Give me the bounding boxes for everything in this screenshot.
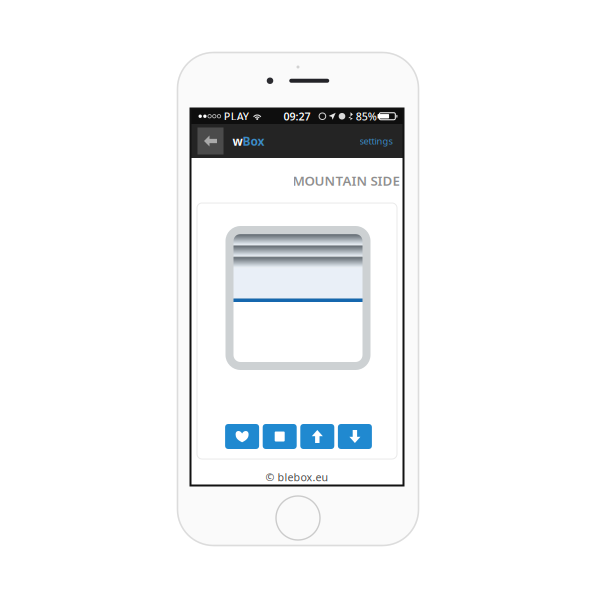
staticText: 85% — [356, 109, 377, 123]
button[interactable]: settings — [353, 128, 398, 154]
staticText: © blebox.eu — [265, 470, 328, 484]
staticText: settings — [359, 135, 392, 147]
button[interactable]: Raise — [300, 424, 334, 449]
button[interactable]: Favourite — [225, 424, 259, 449]
button[interactable]: Lower — [338, 424, 372, 449]
staticText: MOUNTAIN SIDE — [292, 172, 399, 189]
button[interactable]: Stop — [263, 424, 297, 449]
staticText: w — [232, 133, 242, 149]
staticText: PLAY — [224, 109, 249, 123]
button[interactable]: Back — [197, 127, 223, 154]
staticText: 09:27 — [283, 109, 310, 123]
staticText: Box — [242, 133, 264, 149]
